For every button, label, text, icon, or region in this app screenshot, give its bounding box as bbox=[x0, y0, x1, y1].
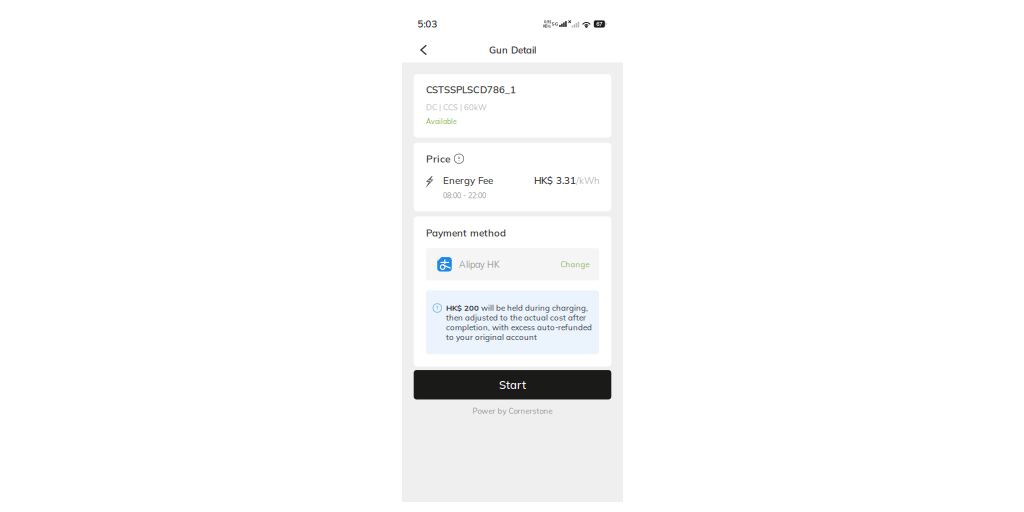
staticText: 67 bbox=[596, 21, 602, 27]
staticText: HK$ 3.31 bbox=[534, 174, 576, 186]
staticText: 5:03 bbox=[417, 18, 437, 30]
staticText: /kWh bbox=[576, 175, 599, 186]
staticText: HK$ 200 will be held during charging, th… bbox=[446, 303, 592, 342]
staticText: Energy Fee bbox=[443, 174, 493, 186]
staticText: CSTSSPLSCD786_1 bbox=[426, 84, 516, 96]
staticText: Alipay HK bbox=[459, 259, 500, 270]
staticText: Power by Cornerstone bbox=[472, 406, 552, 416]
staticText: Gun Detail bbox=[489, 44, 536, 56]
staticText: Payment method bbox=[426, 227, 506, 239]
staticText: 5G bbox=[552, 21, 558, 27]
staticText: Price bbox=[426, 152, 451, 165]
staticText: KB/s bbox=[543, 24, 551, 28]
button[interactable]: Start bbox=[414, 370, 611, 399]
staticText: Start bbox=[499, 378, 526, 392]
staticText: Available bbox=[426, 117, 457, 126]
staticText: 0.91 bbox=[544, 20, 551, 24]
button[interactable]: Price information bbox=[454, 154, 464, 163]
button[interactable]: Back bbox=[414, 40, 434, 60]
staticText: 08:00 - 22:00 bbox=[443, 191, 486, 200]
staticText: Change bbox=[560, 259, 589, 269]
button[interactable]: Alipay HK bbox=[426, 248, 599, 280]
staticText: DC | CCS | 60kW bbox=[426, 102, 487, 112]
